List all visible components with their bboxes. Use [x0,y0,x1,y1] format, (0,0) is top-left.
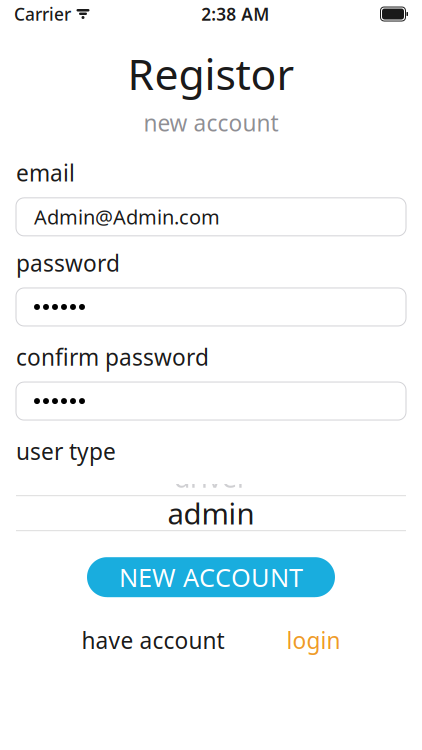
staticText: have account [81,625,224,655]
staticText: admin [167,494,254,533]
staticText: email [16,158,75,188]
button[interactable]: NEW ACCOUNT [87,557,335,597]
staticText: login [286,625,340,655]
staticText: new account [143,108,278,138]
staticText: NEW ACCOUNT [119,560,303,594]
staticText: confirm password [16,342,209,372]
staticText: Admin@Admin.com [34,204,220,230]
staticText: Registor [127,45,294,102]
staticText: driver [174,460,248,495]
staticText: password [16,248,120,278]
staticText: Carrier [14,2,71,25]
button[interactable]: login [286,625,340,655]
staticText: user type [16,436,116,466]
button[interactable]: admin [16,496,406,530]
staticText: 2:38 AM [201,2,269,25]
